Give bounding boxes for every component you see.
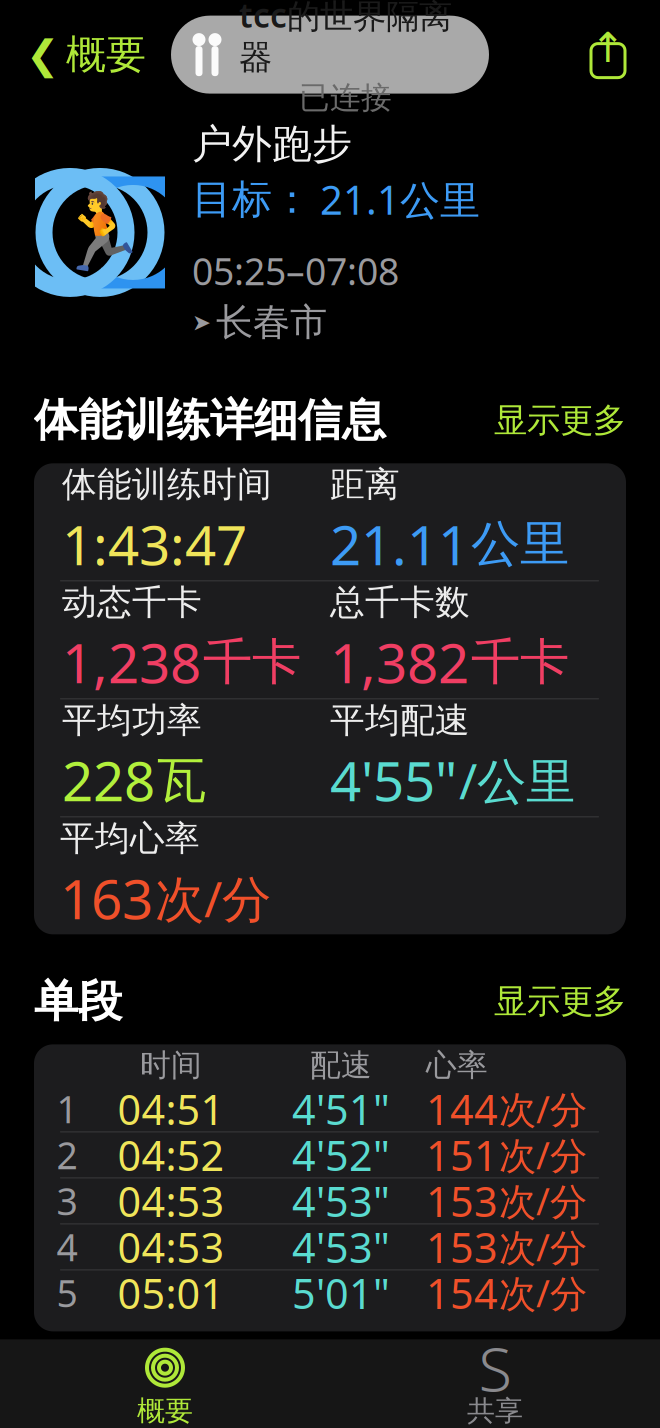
staticText: 已连接 <box>299 79 392 117</box>
staticText: 21.1公里 <box>320 173 480 226</box>
staticText: 144 <box>426 1081 498 1136</box>
staticText: ➤ <box>192 309 211 335</box>
staticText: 次/分 <box>499 1130 587 1180</box>
staticText: 1,382 <box>330 626 469 698</box>
staticText: 3 <box>56 1176 77 1226</box>
staticText: S <box>478 1327 511 1408</box>
staticText: 4'51" <box>292 1081 390 1136</box>
staticText: 体能训练时间 <box>62 463 272 506</box>
staticText: 🏃 <box>53 190 146 275</box>
staticText: 163 <box>60 862 153 934</box>
staticText: 体能训练详细信息 <box>34 393 386 447</box>
staticText: 总千卡数 <box>330 581 470 624</box>
staticText: 次/分 <box>499 1176 587 1226</box>
button[interactable]: 显示更多 <box>494 975 626 1028</box>
staticText: ↑ <box>590 24 625 71</box>
staticText: 4'53" <box>292 1219 390 1274</box>
staticText: 目标： <box>192 175 312 224</box>
staticText: 228 <box>62 744 155 816</box>
staticText: 公里 <box>471 514 569 574</box>
staticText: tcc的世界隔离器 <box>239 0 452 78</box>
staticText: 4'52" <box>292 1127 390 1182</box>
button[interactable]: 共享 <box>582 27 634 83</box>
staticText: ❮ <box>26 32 60 77</box>
staticText: 概要 <box>137 1394 193 1428</box>
staticText: 配速 <box>310 1047 372 1084</box>
staticText: 平均配速 <box>330 699 470 742</box>
staticText: 户外跑步 <box>192 120 352 169</box>
staticText: 4'53" <box>292 1173 390 1228</box>
staticText: 153 <box>426 1173 498 1228</box>
staticText: 平均心率 <box>60 817 200 860</box>
staticText: 次/分 <box>155 865 271 931</box>
staticText: 显示更多 <box>494 981 626 1022</box>
staticText: 4 <box>56 1222 77 1272</box>
staticText: 次/分 <box>499 1084 587 1134</box>
staticText: 04:52 <box>117 1127 224 1182</box>
staticText: 动态千卡 <box>62 581 202 624</box>
staticText: 概要 <box>66 30 146 79</box>
staticText: 次/分 <box>499 1268 587 1318</box>
staticText: 04:53 <box>117 1219 224 1274</box>
staticText: 时间 <box>140 1047 202 1084</box>
button[interactable]: ❮ <box>26 22 146 87</box>
staticText: 04:53 <box>117 1173 224 1228</box>
staticText: 共享 <box>467 1394 523 1428</box>
staticText: 05:25–07:08 <box>192 246 399 295</box>
staticText: 千卡 <box>203 632 301 692</box>
staticText: 5 <box>56 1268 77 1318</box>
staticText: 21.11 <box>330 508 469 580</box>
staticText: 1,238 <box>62 626 201 698</box>
staticText: 心率 <box>426 1047 488 1084</box>
staticText: 瓦 <box>157 750 206 810</box>
staticText: 千卡 <box>471 632 569 692</box>
staticText: 4'55" <box>330 744 457 816</box>
staticText: 次/分 <box>499 1222 587 1272</box>
staticText: 154 <box>426 1265 498 1320</box>
button[interactable]: S <box>330 1347 660 1427</box>
staticText: 151 <box>426 1127 498 1182</box>
staticText: 平均功率 <box>62 699 202 742</box>
staticText: 1 <box>56 1084 77 1134</box>
staticText: 单段 <box>34 974 122 1028</box>
staticText: 5'01" <box>292 1265 390 1320</box>
button[interactable]: 显示更多 <box>494 394 626 447</box>
staticText: 153 <box>426 1219 498 1274</box>
staticText: 2 <box>56 1130 77 1180</box>
staticText: 显示更多 <box>494 400 626 441</box>
staticText: 05:01 <box>117 1265 224 1320</box>
button[interactable]: 概要 <box>0 1347 330 1427</box>
staticText: 1:43:47 <box>62 508 247 580</box>
staticText: 长春市 <box>216 299 327 345</box>
staticText: 距离 <box>330 463 400 506</box>
staticText: /公里 <box>459 747 575 813</box>
staticText: 04:51 <box>117 1081 224 1136</box>
